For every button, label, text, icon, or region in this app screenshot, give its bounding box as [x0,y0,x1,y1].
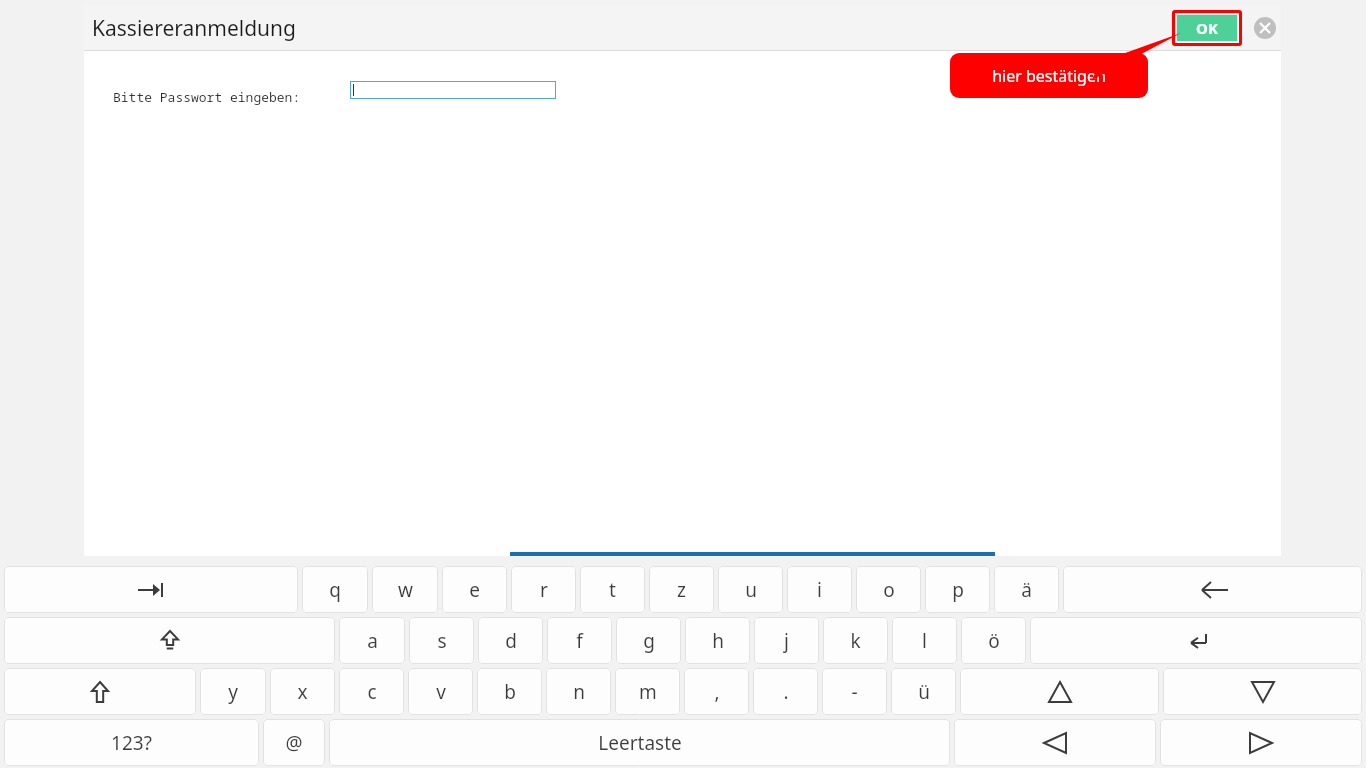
button[interactable]: Runter [1163,668,1362,715]
button[interactable] [350,81,556,99]
staticText: . [783,679,789,705]
staticText: p [952,577,964,603]
button[interactable]: d [478,617,543,664]
button[interactable]: 123? [4,719,259,766]
staticText: q [329,577,341,603]
staticText: ü [918,679,930,705]
staticText: e [469,577,480,603]
button[interactable]: Leertaste [329,719,950,766]
button[interactable]: k [823,617,888,664]
staticText: OK [1196,18,1218,38]
button[interactable]: p [925,566,990,613]
staticText: t [609,577,616,603]
button[interactable]: Schließen [1254,17,1276,39]
staticText: r [540,577,548,603]
button[interactable]: q [302,566,368,613]
button[interactable]: z [649,566,714,613]
staticText: y [228,679,238,705]
button[interactable]: r [511,566,576,613]
button[interactable]: Rechts [1160,719,1362,766]
button[interactable]: @ [263,719,325,766]
button[interactable]: g [616,617,681,664]
staticText: l [922,628,927,654]
staticText: ö [988,628,1000,654]
button[interactable]: a [339,617,405,664]
button[interactable]: . [753,668,818,715]
staticText: o [883,577,895,603]
staticText: , [714,679,720,705]
staticText: w [398,577,413,603]
button[interactable]: i [787,566,852,613]
staticText: @ [285,730,303,756]
button[interactable]: Löschen [1063,566,1362,613]
staticText: k [850,628,861,654]
button[interactable]: w [372,566,438,613]
staticText: f [576,628,583,654]
button[interactable]: ö [961,617,1026,664]
staticText: - [851,679,858,705]
staticText: s [437,628,447,654]
staticText: Leertaste [598,730,682,756]
staticText: Bitte Passwort eingeben: [113,88,301,106]
staticText: c [367,679,377,705]
button[interactable]: Feststelltaste [4,617,335,664]
button[interactable]: o [856,566,921,613]
button[interactable]: j [754,617,819,664]
button[interactable]: Eingabe [1030,617,1362,664]
staticText: Kassiereranmeldung [92,14,296,43]
button[interactable]: f [547,617,612,664]
button[interactable]: y [200,668,266,715]
button[interactable]: OK [1177,15,1237,41]
button[interactable]: n [546,668,611,715]
staticText: hier bestätigen [992,65,1106,87]
staticText: x [297,679,308,705]
button[interactable]: - [822,668,887,715]
button[interactable]: Links [954,719,1156,766]
button[interactable]: x [270,668,335,715]
staticText: u [745,577,757,603]
staticText: j [784,628,789,654]
button[interactable]: u [718,566,783,613]
button[interactable]: Umschalt [4,668,196,715]
button[interactable]: Hoch [960,668,1159,715]
button[interactable]: t [580,566,645,613]
staticText: n [573,679,585,705]
staticText: b [504,679,516,705]
staticText: z [677,577,686,603]
button[interactable]: m [615,668,680,715]
button[interactable]: h [685,617,750,664]
button[interactable]: c [339,668,404,715]
button[interactable]: b [477,668,542,715]
button[interactable]: ä [994,566,1059,613]
staticText: i [817,577,822,603]
button[interactable]: s [409,617,474,664]
button[interactable]: Tabulator [4,566,298,613]
staticText: d [505,628,517,654]
staticText: a [367,628,378,654]
staticText: g [643,628,655,654]
staticText: h [712,628,724,654]
button[interactable]: v [408,668,473,715]
button[interactable]: e [442,566,507,613]
button[interactable]: ü [891,668,956,715]
button[interactable]: l [892,617,957,664]
staticText: 123? [111,730,152,756]
staticText: v [436,679,446,705]
button[interactable]: , [684,668,749,715]
staticText: ä [1021,577,1032,603]
